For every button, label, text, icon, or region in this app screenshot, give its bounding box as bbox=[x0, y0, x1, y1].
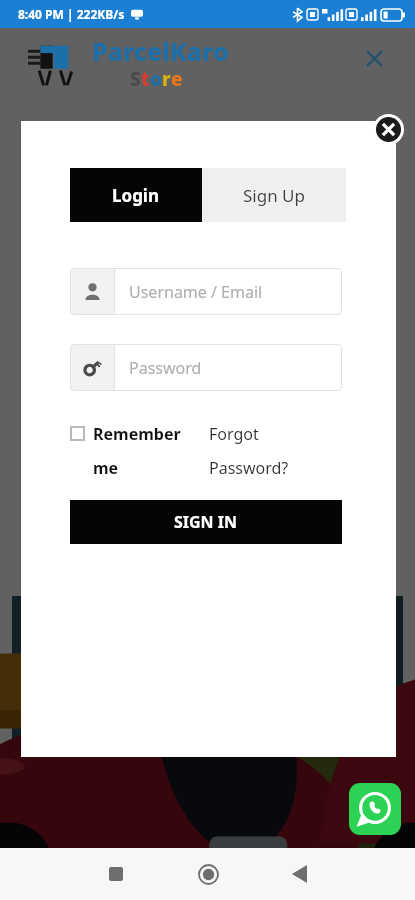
button[interactable]: Forgot Password? bbox=[209, 423, 305, 478]
staticText: Password bbox=[129, 357, 202, 379]
button[interactable]: Login bbox=[70, 168, 202, 222]
button[interactable]: SIGN IN bbox=[70, 500, 342, 544]
button[interactable]: Username / Email bbox=[70, 268, 342, 315]
staticText: Username / Email bbox=[129, 281, 263, 303]
button[interactable]: Home bbox=[186, 852, 230, 896]
button[interactable]: Sign Up bbox=[202, 168, 346, 222]
button[interactable]: Remember me bbox=[70, 423, 202, 478]
button[interactable]: Chat on WhatsApp bbox=[349, 783, 401, 835]
button[interactable]: Close banner bbox=[357, 41, 391, 75]
staticText: 8:40 PM | 222KB/s bbox=[18, 6, 125, 22]
staticText: t bbox=[141, 66, 150, 92]
staticText: SIGN IN bbox=[174, 511, 238, 533]
staticText: o bbox=[150, 66, 162, 92]
button[interactable]: Back bbox=[277, 852, 321, 896]
staticText: Sign Up bbox=[243, 184, 305, 207]
staticText: Remember me bbox=[93, 423, 202, 478]
button[interactable]: Recents bbox=[94, 852, 138, 896]
staticText: S bbox=[130, 66, 141, 92]
staticText: Login bbox=[112, 184, 160, 207]
staticText: r bbox=[162, 66, 171, 92]
button[interactable]: Password bbox=[70, 344, 342, 391]
staticText: ParcelKaro bbox=[92, 34, 229, 68]
button[interactable]: Close dialog bbox=[373, 114, 404, 145]
staticText: Forgot Password? bbox=[209, 423, 305, 478]
staticText: e bbox=[171, 66, 183, 92]
